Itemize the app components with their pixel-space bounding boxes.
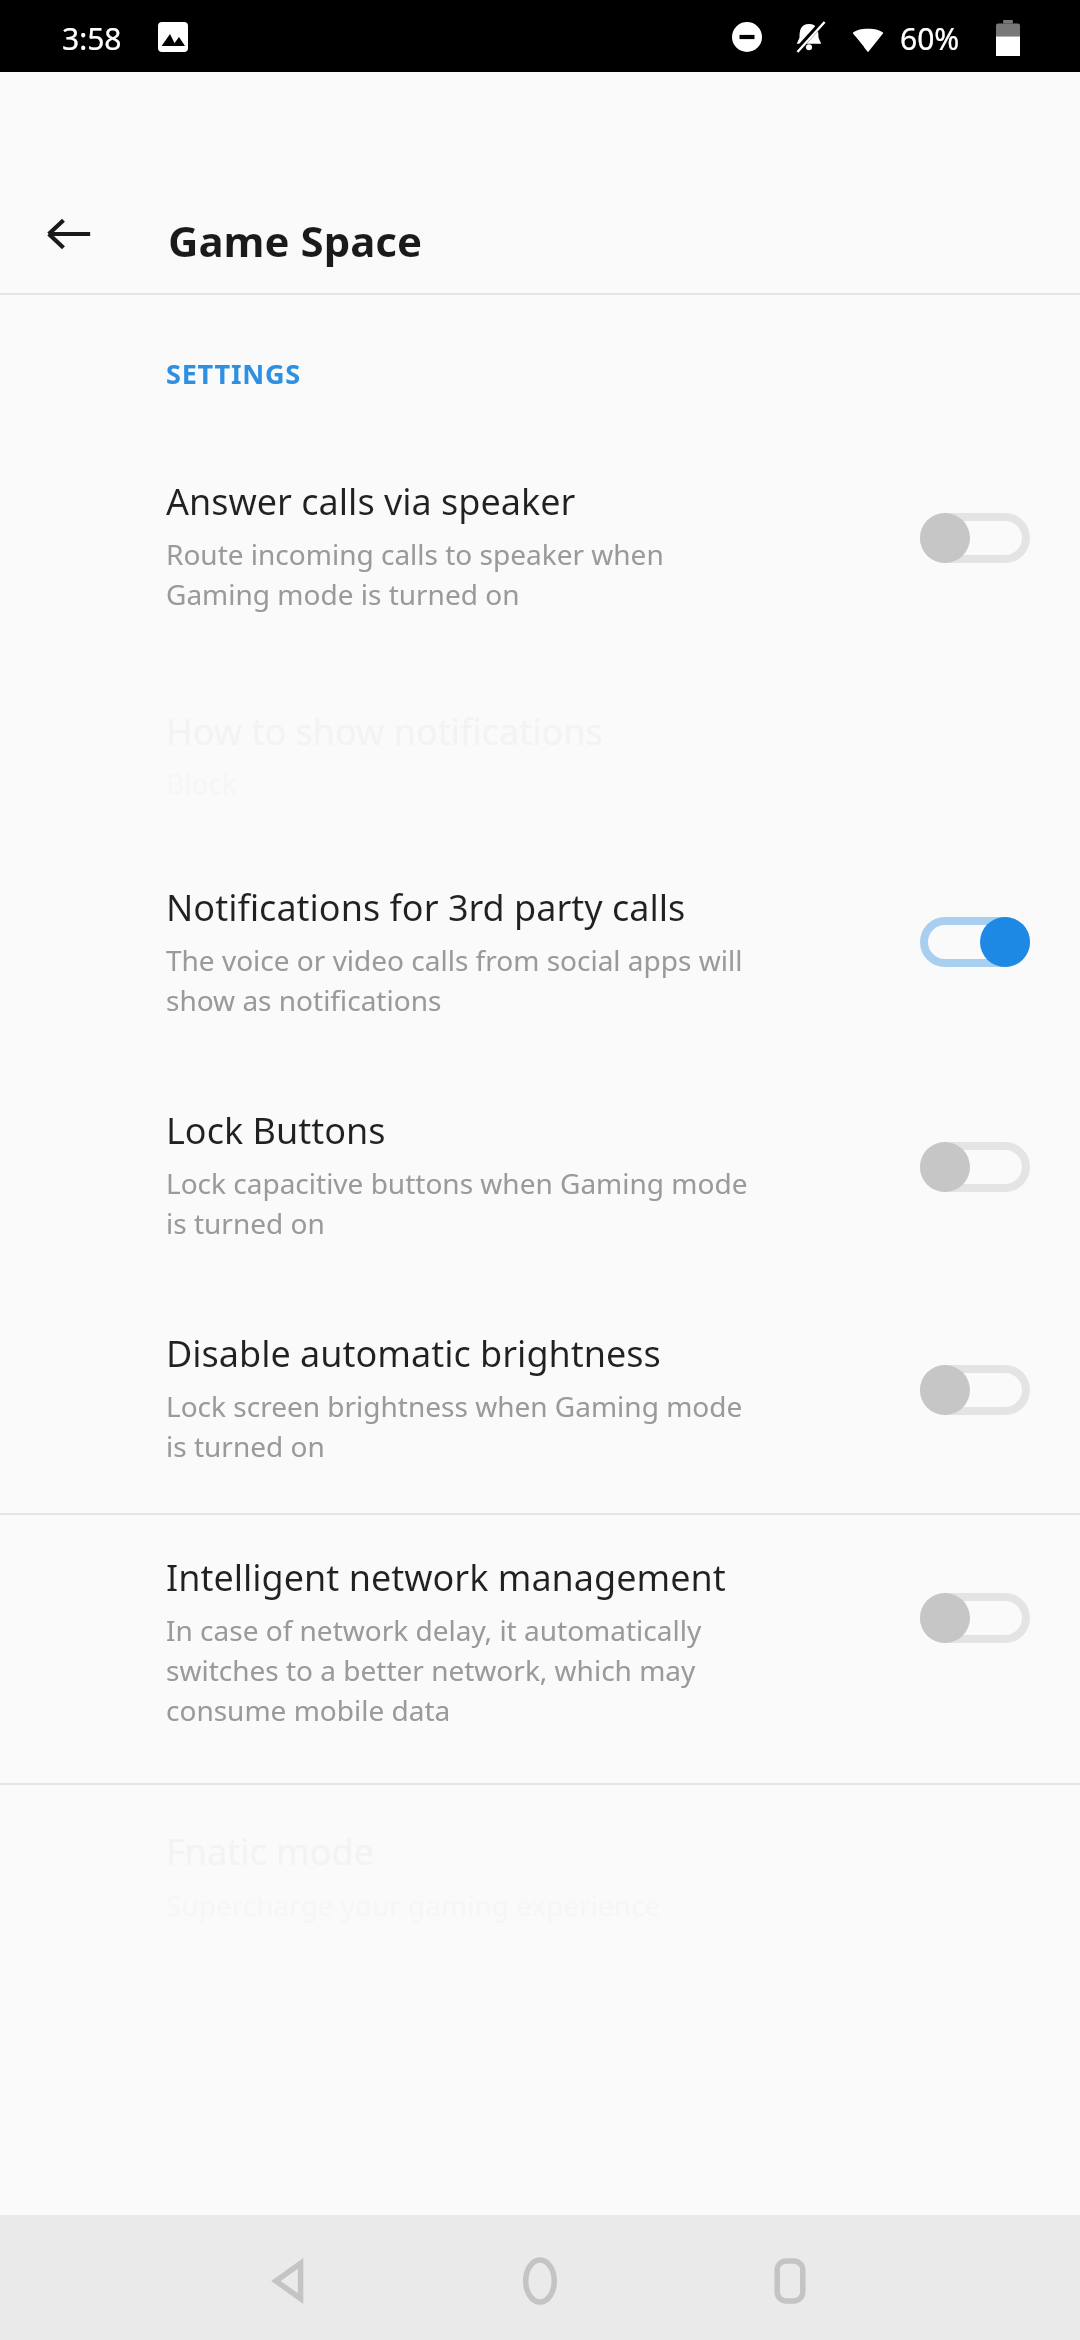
staticText: Lock screen brightness when Gaming mode — [166, 1387, 743, 1425]
button[interactable]: Recents — [760, 2251, 820, 2311]
button[interactable]: Intelligent network management, off — [900, 1573, 1050, 1663]
staticText: The voice or video calls from social app… — [166, 941, 743, 979]
button[interactable]: Lock Buttons, off — [900, 1122, 1050, 1212]
staticText: is turned on — [166, 1204, 325, 1242]
staticText: 3:58 — [62, 18, 122, 59]
staticText: is turned on — [166, 1427, 325, 1465]
button[interactable]: Disable automatic brightness — [0, 1295, 1080, 1455]
staticText: Lock Buttons — [166, 1106, 386, 1155]
staticText: consume mobile data — [166, 1691, 451, 1729]
button[interactable]: Intelligent network management — [0, 1519, 1080, 1719]
staticText: SETTINGS — [166, 355, 301, 392]
staticText: switches to a better network, which may — [166, 1651, 696, 1689]
staticText: Game Space — [168, 212, 423, 269]
button[interactable]: Home — [510, 2251, 570, 2311]
staticText: Disable automatic brightness — [166, 1329, 661, 1378]
button[interactable]: Notifications for 3rd party calls, on — [900, 897, 1050, 987]
staticText: Gaming mode is turned on — [166, 575, 520, 613]
button[interactable]: Back — [30, 195, 108, 273]
staticText: 60% — [900, 18, 960, 59]
staticText: Notifications for 3rd party calls — [166, 883, 686, 932]
button[interactable]: Notifications for 3rd party calls — [0, 849, 1080, 1009]
button[interactable]: Back — [260, 2251, 320, 2311]
button[interactable]: Answer calls via speaker — [0, 443, 1080, 603]
button[interactable]: Answer calls via speaker, off — [900, 493, 1050, 583]
button[interactable]: Disable automatic brightness, off — [900, 1345, 1050, 1435]
staticText: show as notifications — [166, 981, 442, 1019]
staticText: In case of network delay, it automatical… — [166, 1611, 702, 1649]
staticText: Route incoming calls to speaker when — [166, 535, 664, 573]
staticText: Intelligent network management — [166, 1553, 726, 1602]
staticText: Lock capacitive buttons when Gaming mode — [166, 1164, 748, 1202]
button[interactable]: Lock Buttons — [0, 1072, 1080, 1232]
staticText: Answer calls via speaker — [166, 477, 576, 526]
